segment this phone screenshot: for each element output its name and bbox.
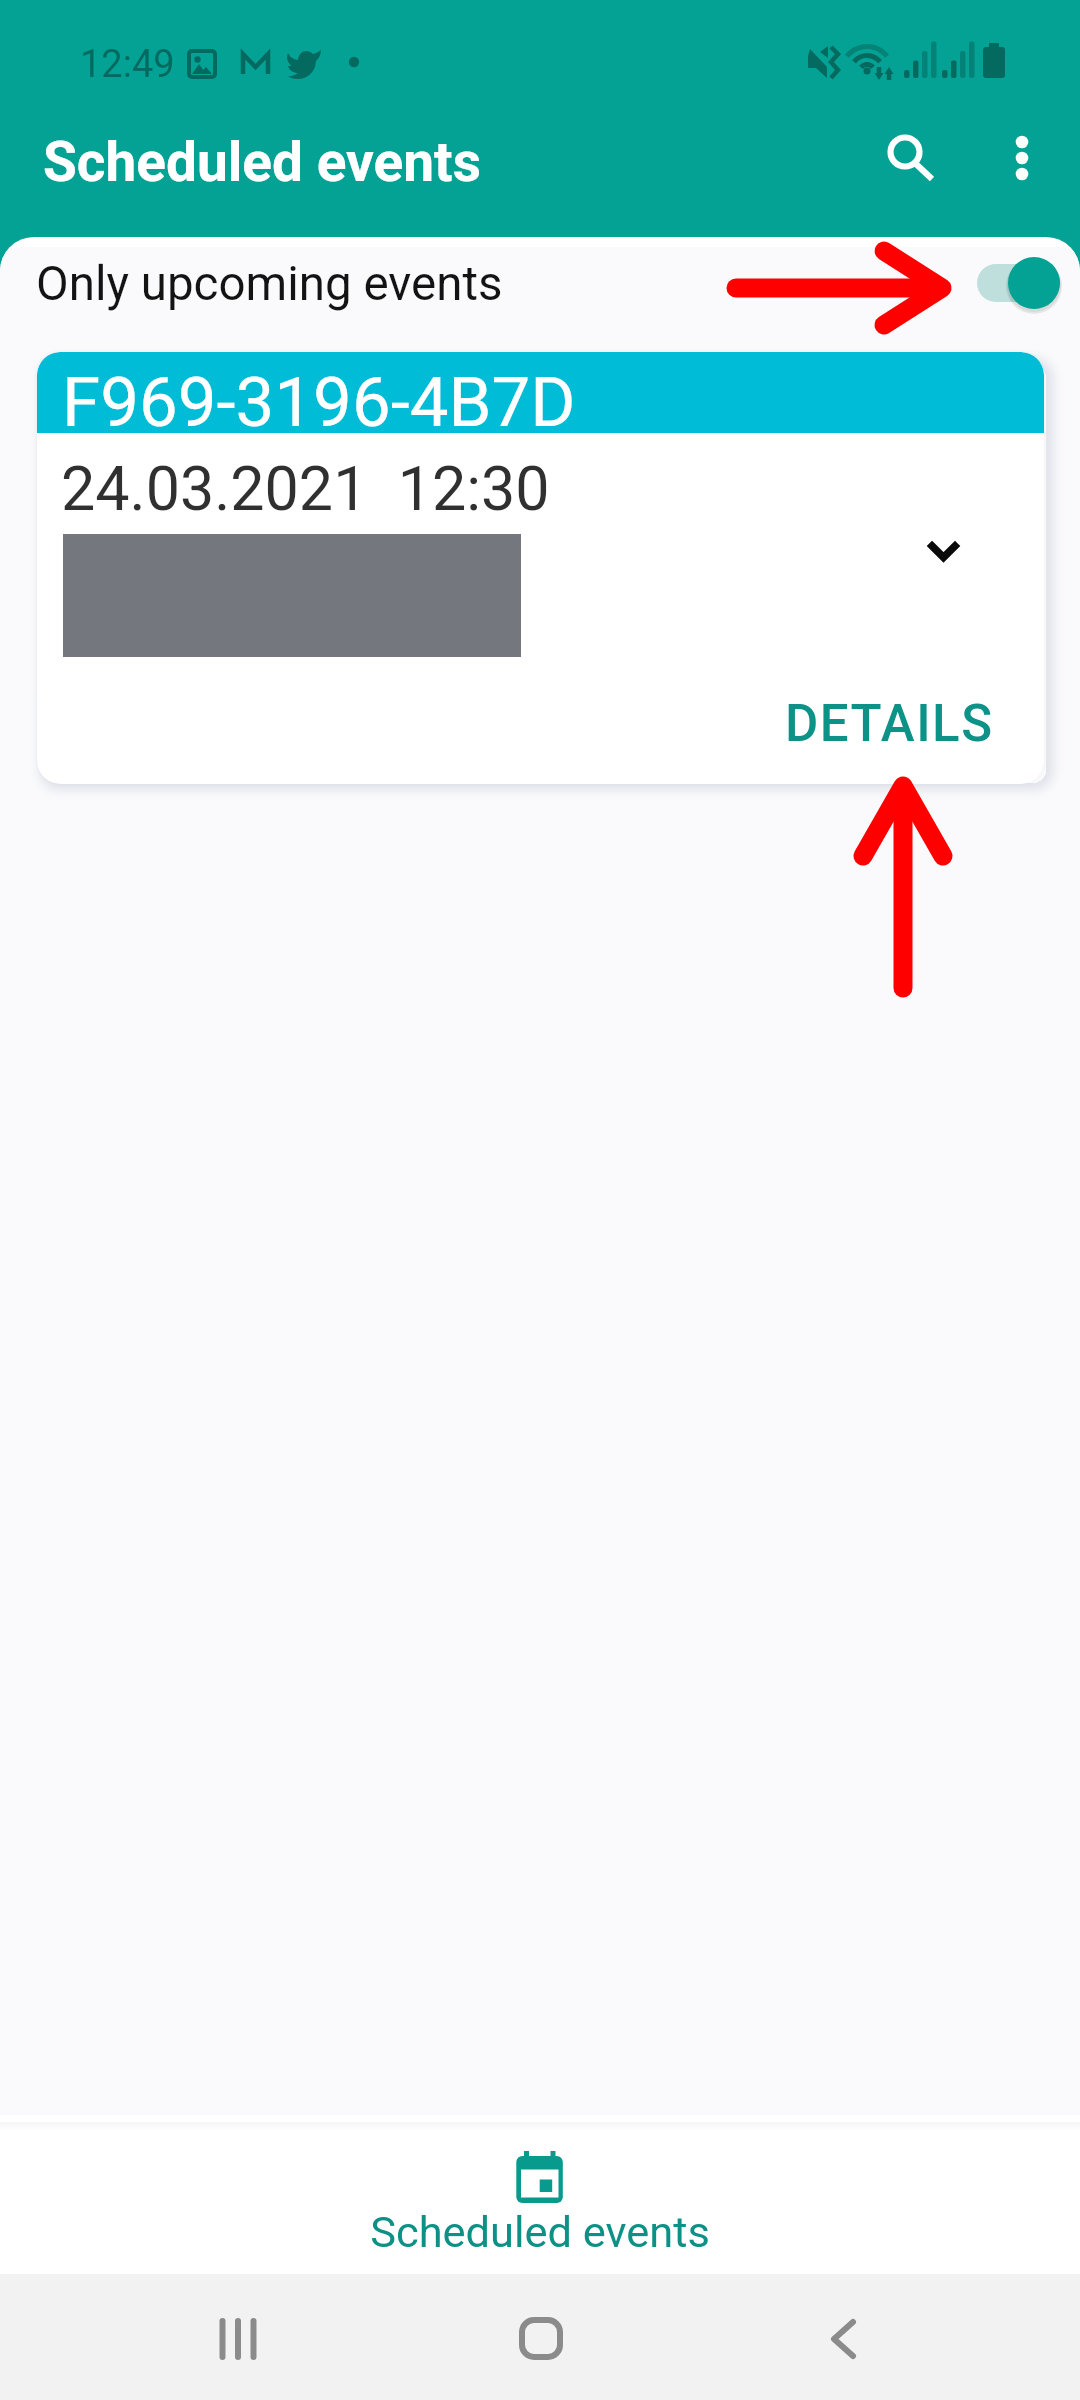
staticText: 12:49 xyxy=(80,42,175,87)
staticText: Scheduled events xyxy=(43,130,481,194)
button[interactable]: Back xyxy=(784,2275,904,2395)
staticText: 24.03.2021 12:30 xyxy=(61,453,550,524)
staticText: Scheduled events xyxy=(0,2207,1080,2258)
staticText: F969-3196-4B7D xyxy=(62,362,576,443)
button[interactable]: Scheduled events xyxy=(0,2115,1080,2274)
button[interactable]: Home xyxy=(481,2274,601,2394)
button[interactable]: Expand xyxy=(904,510,984,590)
button[interactable]: Only upcoming events xyxy=(0,237,1080,352)
button[interactable]: Only upcoming events toggle xyxy=(970,247,1070,323)
staticText: Only upcoming events xyxy=(36,256,503,312)
button[interactable]: Search xyxy=(856,103,952,199)
staticText: DETAILS xyxy=(785,694,994,754)
button[interactable]: More options xyxy=(974,110,1070,206)
button[interactable]: Recent apps xyxy=(178,2275,298,2395)
button[interactable]: F969-3196-4B7D xyxy=(37,352,1044,784)
button[interactable]: DETAILS xyxy=(765,678,1014,770)
